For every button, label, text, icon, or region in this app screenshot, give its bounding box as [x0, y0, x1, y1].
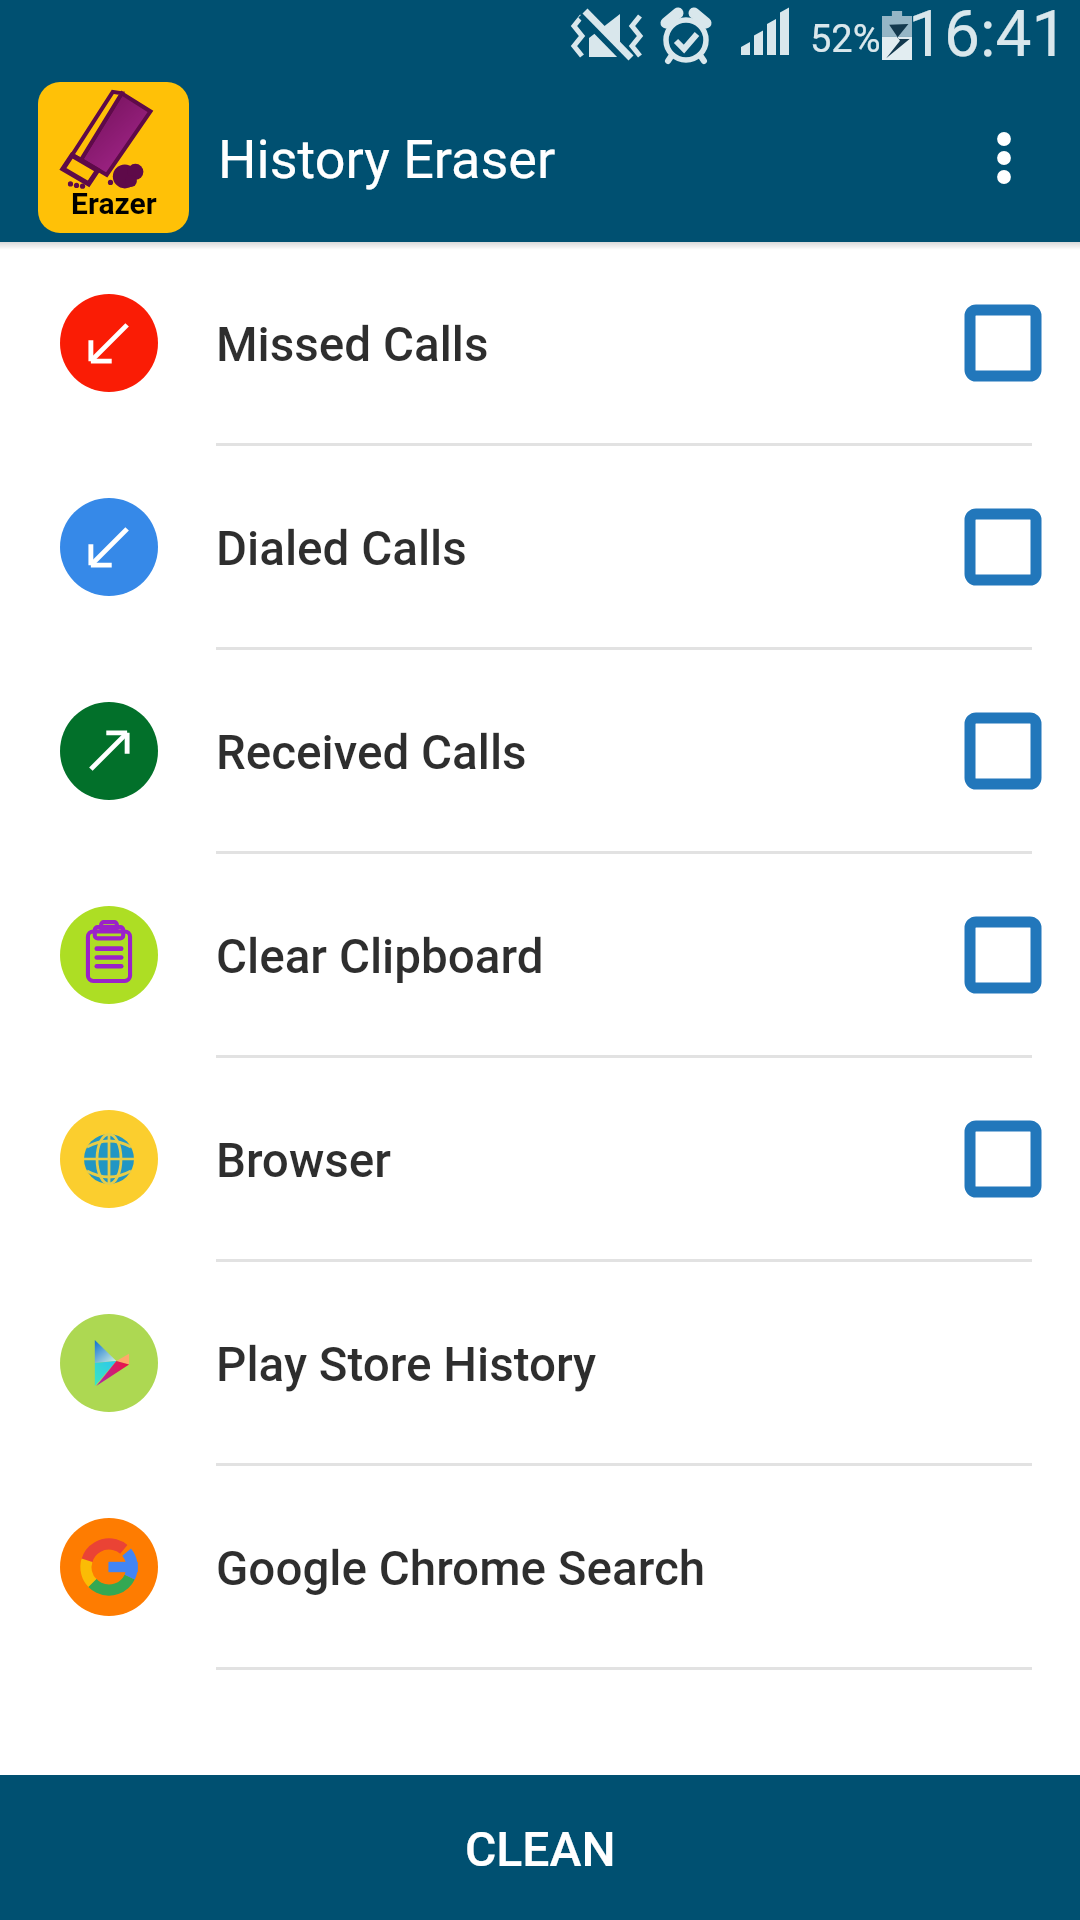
button[interactable]: Select Missed Calls — [965, 305, 1041, 381]
staticText: 16:41 — [908, 0, 1068, 65]
button[interactable]: Missed Calls — [0, 242, 1080, 443]
button[interactable]: Select Browser — [965, 1121, 1041, 1197]
staticText: Google Chrome Search — [216, 1541, 965, 1597]
button[interactable]: Select Dialed Calls — [965, 509, 1041, 585]
staticText: Dialed Calls — [216, 521, 965, 577]
staticText: Browser — [216, 1133, 965, 1189]
button[interactable]: CLEAN — [0, 1775, 1080, 1920]
button[interactable]: Google Chrome Search — [0, 1466, 1080, 1667]
button[interactable]: Select Clear Clipboard — [965, 917, 1041, 993]
staticText: Clear Clipboard — [216, 929, 965, 985]
button[interactable]: Clear Clipboard — [0, 854, 1080, 1055]
button[interactable]: Play Store History — [0, 1262, 1080, 1463]
staticText: Missed Calls — [216, 317, 965, 373]
staticText: Received Calls — [216, 725, 965, 781]
staticText: History Eraser — [218, 128, 556, 191]
button[interactable]: Select Received Calls — [965, 713, 1041, 789]
staticText: Erazer — [71, 186, 157, 221]
button[interactable]: More options — [928, 68, 1080, 242]
button[interactable]: Browser — [0, 1058, 1080, 1259]
staticText: CLEAN — [465, 1821, 616, 1877]
staticText: Play Store History — [216, 1337, 965, 1393]
button[interactable]: Dialed Calls — [0, 446, 1080, 647]
staticText: 52% — [810, 17, 881, 62]
button[interactable]: Received Calls — [0, 650, 1080, 851]
button[interactable]: History Eraser app icon — [38, 80, 189, 231]
